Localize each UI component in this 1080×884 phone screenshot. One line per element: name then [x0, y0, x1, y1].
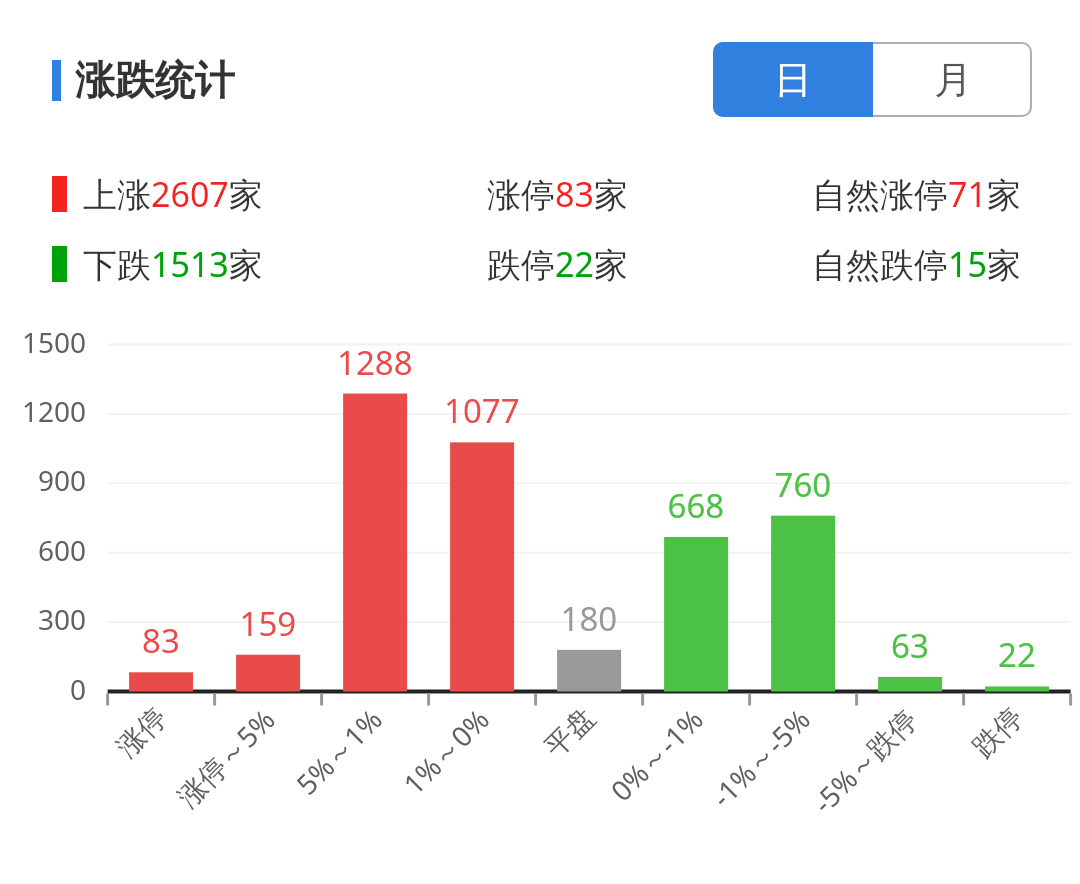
staticText: 上涨2607家 — [83, 171, 263, 217]
staticText: 跌停22家 — [487, 241, 628, 287]
staticText: 自然涨停71家 — [812, 171, 1021, 217]
button[interactable]: 涨跌统计 — [52, 55, 235, 105]
button[interactable]: 自然跌停15家 — [812, 241, 1021, 287]
staticText: 涨跌统计 — [75, 55, 235, 105]
staticText: 日 — [774, 56, 812, 104]
button[interactable]: 涨停83家 — [487, 171, 628, 217]
staticText: 下跌1513家 — [83, 241, 263, 287]
staticText: 月 — [934, 56, 972, 104]
button[interactable]: 日 — [713, 42, 873, 117]
button[interactable]: 上涨2607家 — [83, 171, 263, 217]
other: 涨跌分布柱状图 — [0, 0, 1080, 884]
button[interactable]: 自然涨停71家 — [812, 171, 1021, 217]
staticText: 自然跌停15家 — [812, 241, 1021, 287]
staticText: 涨停83家 — [487, 171, 628, 217]
button[interactable]: 跌停22家 — [487, 241, 628, 287]
button[interactable]: 月 — [873, 42, 1032, 117]
button[interactable]: 下跌1513家 — [83, 241, 263, 287]
